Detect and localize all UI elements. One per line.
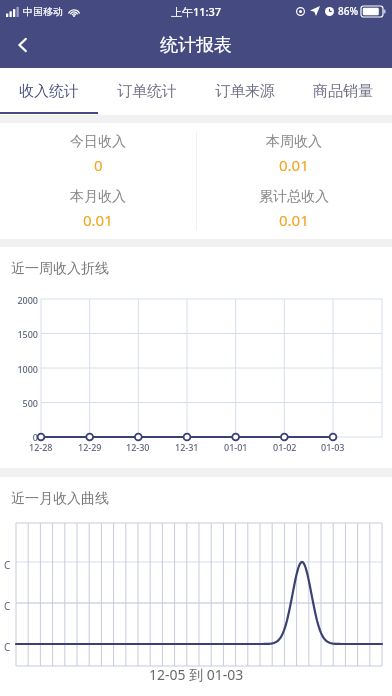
button[interactable]: 今日收入	[0, 123, 196, 239]
staticText: 500	[22, 397, 38, 409]
button[interactable]: 收入统计	[0, 68, 98, 115]
staticText: 12-31	[175, 441, 199, 453]
staticText: 累计总收入	[259, 188, 329, 206]
staticText: 0	[32, 431, 38, 443]
staticText: 12-29	[78, 441, 102, 453]
staticText: C	[4, 558, 11, 572]
staticText: 订单来源	[215, 82, 275, 101]
staticText: 近一月收入曲线	[11, 490, 109, 508]
staticText: 12-05 到 01-03	[149, 665, 244, 684]
staticText: 12-30	[126, 441, 150, 453]
staticText: 商品销量	[313, 82, 373, 101]
staticText: 01-02	[273, 441, 297, 453]
staticText: 本周收入	[266, 133, 322, 151]
staticText: 1500	[17, 328, 38, 340]
staticText: 近一周收入折线	[11, 260, 109, 278]
staticText: 订单统计	[117, 82, 177, 101]
staticText: 86%	[338, 4, 358, 18]
staticText: 01-03	[321, 441, 345, 453]
staticText: 本月收入	[70, 188, 126, 206]
staticText: 上午11:37	[171, 4, 222, 19]
staticText: 今日收入	[70, 133, 126, 151]
button[interactable]: 商品销量	[294, 68, 392, 115]
staticText: 01-01	[224, 441, 248, 453]
button[interactable]: 本周收入	[196, 123, 392, 239]
staticText: 收入统计	[19, 82, 79, 101]
staticText: 中国移动	[23, 5, 63, 18]
staticText: C	[4, 640, 11, 654]
button[interactable]: Back	[0, 22, 46, 68]
button[interactable]: 订单统计	[98, 68, 196, 115]
staticText: 2000	[17, 294, 38, 306]
staticText: 0	[94, 155, 103, 175]
staticText: C	[4, 599, 11, 613]
staticText: 0.01	[279, 210, 309, 230]
staticText: 0.01	[83, 210, 113, 230]
staticText: 0.01	[279, 155, 309, 175]
button[interactable]: 订单来源	[196, 68, 294, 115]
staticText: 12-28	[29, 441, 53, 453]
staticText: 统计报表	[160, 34, 232, 57]
staticText: 1000	[17, 363, 38, 375]
